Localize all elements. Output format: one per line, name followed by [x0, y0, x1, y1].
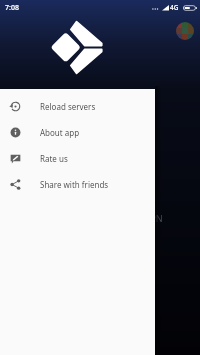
button[interactable]: Rate us — [0, 145, 155, 171]
button[interactable]: Share with friends — [0, 171, 155, 197]
button[interactable]: Select country — [176, 22, 194, 40]
staticText: Share with friends — [40, 179, 109, 190]
button[interactable]: About app — [0, 119, 155, 145]
staticText: Rate us — [40, 153, 68, 164]
staticText: VPN — [145, 212, 163, 224]
button[interactable]: Reload servers — [0, 93, 155, 119]
staticText: Reload servers — [40, 101, 96, 112]
staticText: About app — [40, 127, 80, 138]
staticText: 7:08 — [5, 3, 19, 13]
staticText: 4G — [170, 3, 179, 12]
